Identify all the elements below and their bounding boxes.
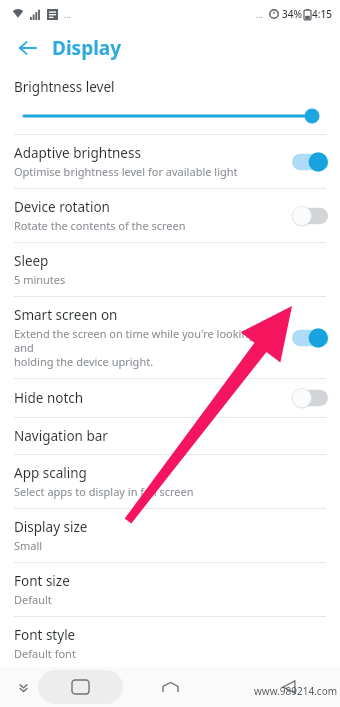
staticText: Navigation bar (14, 427, 108, 445)
button[interactable]: Back (274, 672, 304, 702)
button[interactable]: Back (14, 34, 42, 62)
button[interactable]: Recents (38, 670, 123, 704)
button[interactable]: Font style (0, 617, 340, 667)
button[interactable]: Toggle on (292, 328, 328, 348)
staticText: 5 minutes (14, 272, 66, 287)
staticText: Optimise brightness level for available … (14, 164, 238, 179)
staticText: ... (64, 8, 72, 20)
button[interactable]: App scaling (0, 455, 340, 508)
staticText: Device rotation (14, 198, 110, 216)
staticText: Smart screen on (14, 306, 118, 324)
button[interactable]: Navigation bar (0, 418, 340, 454)
staticText: Default (14, 592, 52, 607)
staticText: www.989214.com (254, 684, 338, 698)
staticText: ... (256, 8, 264, 20)
staticText: Hide notch (14, 389, 84, 407)
button[interactable]: Adaptive brightness (0, 135, 340, 188)
staticText: Font size (14, 572, 70, 590)
button[interactable]: Smart screen on (0, 297, 340, 378)
staticText: Default font (14, 646, 76, 658)
staticText: Adaptive brightness (14, 144, 141, 162)
button[interactable]: Home (155, 672, 185, 702)
staticText: 4:15 (312, 7, 332, 21)
staticText: App scaling (14, 464, 87, 482)
button[interactable]: Display size (0, 509, 340, 562)
button[interactable]: Toggle off (292, 206, 328, 226)
staticText: Sleep (14, 252, 49, 270)
button[interactable]: Brightness level (0, 68, 340, 134)
staticText: Display size (14, 518, 88, 536)
staticText: 34% (282, 7, 302, 21)
button[interactable]: Sleep (0, 243, 340, 296)
staticText: Font style (14, 626, 76, 644)
button[interactable]: Toggle off (292, 388, 328, 408)
button[interactable]: Hide notch (0, 379, 340, 417)
staticText: Brightness level (14, 78, 115, 96)
button[interactable]: Toggle on (292, 152, 328, 172)
staticText: Extend the screen on time while you're l… (14, 326, 284, 369)
staticText: Small (14, 538, 43, 553)
button[interactable]: Font size (0, 563, 340, 616)
button[interactable]: Device rotation (0, 189, 340, 242)
staticText: Rotate the contents of the screen (14, 218, 186, 233)
staticText: Select apps to display in full screen (14, 484, 194, 499)
button[interactable]: Hide navigation bar (10, 674, 36, 700)
staticText: Display (52, 35, 122, 61)
